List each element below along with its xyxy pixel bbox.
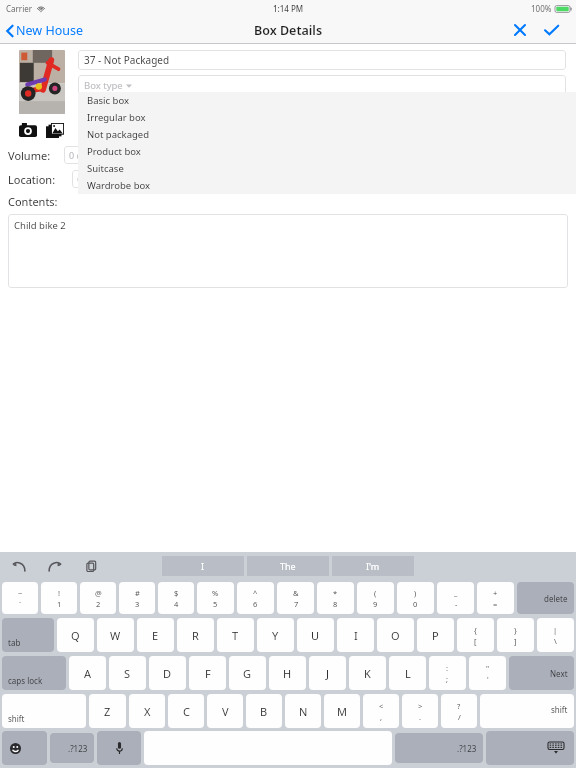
button[interactable]: ~ xyxy=(2,582,38,614)
button[interactable]: Redo xyxy=(46,557,64,575)
button[interactable]: ^ xyxy=(237,582,274,614)
button[interactable]: Irregular box xyxy=(78,109,576,126)
staticText: C xyxy=(183,704,190,719)
button[interactable]: Take photo xyxy=(18,120,38,140)
button[interactable]: shift xyxy=(2,694,86,728)
staticText: X xyxy=(144,704,151,719)
button[interactable]: @ xyxy=(80,582,116,614)
button[interactable]: _ xyxy=(437,582,474,614)
button[interactable]: E xyxy=(137,618,174,652)
staticText: K xyxy=(364,666,371,681)
button[interactable]: { xyxy=(457,618,494,652)
button[interactable]: Wardrobe box xyxy=(78,177,576,194)
button[interactable]: * xyxy=(317,582,354,614)
staticText: / xyxy=(458,712,461,722)
button[interactable]: Not packaged xyxy=(78,126,576,143)
button[interactable]: U xyxy=(297,618,334,652)
button[interactable]: Paste xyxy=(82,557,100,575)
button[interactable]: delete xyxy=(517,582,574,614)
button[interactable]: Child bike 2 xyxy=(8,214,568,288)
button[interactable]: ) xyxy=(397,582,434,614)
button[interactable]: Box type xyxy=(78,75,566,95)
button[interactable]: # xyxy=(119,582,155,614)
button[interactable]: X xyxy=(129,694,165,728)
button[interactable]: V xyxy=(207,694,243,728)
button[interactable]: M xyxy=(324,694,360,728)
button[interactable]: Q xyxy=(57,618,94,652)
button[interactable]: tab xyxy=(2,618,54,652)
button[interactable]: 0 c xyxy=(64,146,154,164)
button[interactable]: caps lock xyxy=(2,656,66,690)
staticText: E xyxy=(152,628,159,643)
button[interactable]: Cancel xyxy=(507,17,533,43)
button[interactable]: ! xyxy=(41,582,77,614)
button[interactable]: C xyxy=(168,694,204,728)
button[interactable]: Basic box xyxy=(78,92,576,109)
button[interactable]: Y xyxy=(257,618,294,652)
button[interactable]: | xyxy=(537,618,574,652)
button[interactable]: Undo xyxy=(10,557,28,575)
button[interactable]: G xyxy=(229,656,266,690)
button[interactable]: .?123 xyxy=(395,733,483,763)
button[interactable]: shift xyxy=(480,694,574,728)
button[interactable]: 37 - Not Packaged xyxy=(78,50,566,70)
button[interactable]: $ xyxy=(158,582,194,614)
button[interactable]: < xyxy=(363,694,399,728)
button[interactable]: N xyxy=(285,694,321,728)
button[interactable]: > xyxy=(402,694,438,728)
button[interactable]: .?123 xyxy=(50,733,94,763)
button[interactable]: Shared xyxy=(78,122,145,137)
button[interactable]: B xyxy=(246,694,282,728)
button[interactable]: I'm xyxy=(332,556,414,576)
button[interactable]: % xyxy=(197,582,234,614)
button[interactable]: Z xyxy=(89,694,126,728)
button[interactable]: } xyxy=(497,618,534,652)
button[interactable]: ( xyxy=(357,582,394,614)
button[interactable]: I xyxy=(162,556,244,576)
button[interactable]: D xyxy=(149,656,186,690)
button[interactable]: " xyxy=(469,656,506,690)
button[interactable]: O xyxy=(377,618,414,652)
staticText: ? xyxy=(457,701,461,711)
button[interactable]: Next xyxy=(509,656,574,690)
button[interactable]: Emoji xyxy=(2,731,47,765)
button[interactable]: Product box xyxy=(78,143,576,160)
button[interactable]: L xyxy=(389,656,426,690)
button[interactable]: R xyxy=(177,618,214,652)
staticText: H xyxy=(283,666,292,681)
button[interactable]: I xyxy=(337,618,374,652)
button[interactable]: A xyxy=(69,656,106,690)
staticText: | xyxy=(553,625,558,635)
button[interactable]: P xyxy=(417,618,454,652)
button[interactable]: J xyxy=(309,656,346,690)
button[interactable]: & xyxy=(277,582,314,614)
staticText: Child bike 2 xyxy=(14,219,66,232)
staticText: 1 xyxy=(57,599,62,609)
button[interactable]: ? xyxy=(441,694,477,728)
button[interactable]: W xyxy=(97,618,134,652)
button[interactable]: Suitcase xyxy=(78,160,576,177)
button[interactable]: : xyxy=(429,656,466,690)
button[interactable]: Choose from library xyxy=(45,120,65,140)
button[interactable]: H xyxy=(269,656,306,690)
button[interactable]: Unpacked xyxy=(78,101,160,116)
button[interactable]: Hide keyboard xyxy=(486,731,574,765)
button[interactable]: The xyxy=(247,556,329,576)
button[interactable]: F xyxy=(189,656,226,690)
button[interactable]: New House xyxy=(4,18,85,43)
button[interactable]: + xyxy=(477,582,514,614)
button[interactable]: Save xyxy=(538,17,564,43)
staticText: < xyxy=(379,701,384,711)
button[interactable]: K xyxy=(349,656,386,690)
button[interactable]: S xyxy=(109,656,146,690)
button[interactable]: T xyxy=(217,618,254,652)
button[interactable]: Box photo xyxy=(19,50,65,114)
staticText: $ xyxy=(174,588,179,598)
staticText: A xyxy=(84,666,92,681)
button[interactable]: Dictate xyxy=(97,731,141,765)
button[interactable]: Garage xyxy=(72,170,162,188)
staticText: 6 xyxy=(253,599,258,609)
